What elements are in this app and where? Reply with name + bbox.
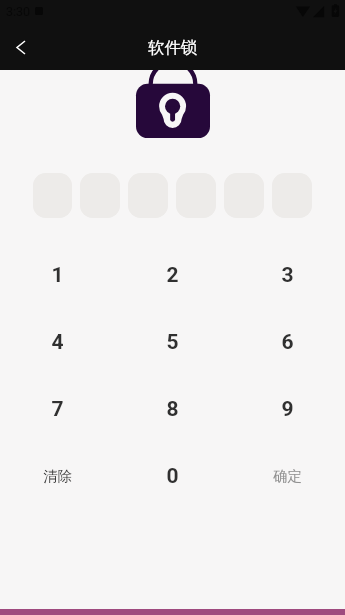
button[interactable]: 4 xyxy=(0,309,115,376)
button[interactable]: 6 xyxy=(230,309,345,376)
staticText: 清除 xyxy=(43,467,72,485)
button[interactable]: 3 xyxy=(230,242,345,309)
button[interactable]: 9 xyxy=(230,376,345,443)
button[interactable]: 1 xyxy=(0,242,115,309)
staticText: 7 xyxy=(51,397,64,422)
staticText: 8 xyxy=(166,397,179,422)
staticText: 1 xyxy=(51,263,64,288)
staticText: 6 xyxy=(281,330,294,355)
button[interactable]: 8 xyxy=(115,376,230,443)
button[interactable]: 确定 xyxy=(230,443,345,510)
staticText: 软件锁 xyxy=(148,37,198,58)
button[interactable]: 2 xyxy=(115,242,230,309)
staticText: 9 xyxy=(281,397,294,422)
staticText: 3 xyxy=(281,263,294,288)
button[interactable]: 0 xyxy=(115,443,230,510)
button[interactable]: 清除 xyxy=(0,443,115,510)
button[interactable]: 5 xyxy=(115,309,230,376)
staticText: 0 xyxy=(166,464,179,489)
staticText: 4 xyxy=(51,330,64,355)
button[interactable]: Back xyxy=(0,22,42,70)
staticText: 5 xyxy=(166,330,179,355)
button[interactable]: 7 xyxy=(0,376,115,443)
staticText: 确定 xyxy=(273,467,302,485)
staticText: 2 xyxy=(166,263,179,288)
